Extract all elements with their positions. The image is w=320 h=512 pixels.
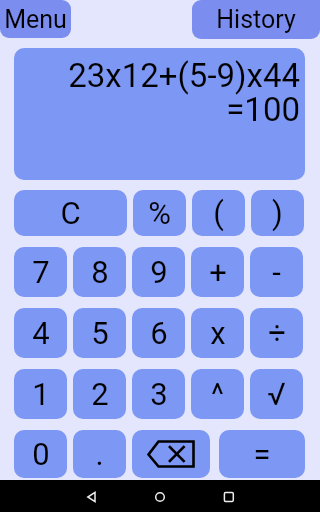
staticText: √ xyxy=(267,376,286,412)
staticText: . xyxy=(95,436,104,472)
button[interactable]: 7 xyxy=(14,247,67,297)
button[interactable]: = xyxy=(219,430,305,478)
staticText: = xyxy=(253,436,271,472)
button[interactable]: 8 xyxy=(73,247,126,297)
staticText: History xyxy=(216,5,296,34)
staticText: 7 xyxy=(32,254,50,290)
staticText: 1 xyxy=(32,376,50,412)
button[interactable]: 2 xyxy=(73,369,126,419)
button[interactable]: ( xyxy=(192,190,245,236)
button[interactable]: % xyxy=(133,190,186,236)
staticText: Menu xyxy=(4,5,67,34)
staticText: ) xyxy=(272,195,283,231)
button[interactable]: Menu xyxy=(0,0,71,38)
staticText: % xyxy=(148,195,171,231)
button[interactable]: x xyxy=(191,308,244,358)
staticText: 23x12+(5-9)x44 =100 xyxy=(14,56,300,129)
button[interactable]: - xyxy=(250,247,303,297)
staticText: 0 xyxy=(32,436,50,472)
staticText: ^ xyxy=(211,376,224,412)
button[interactable]: 3 xyxy=(132,369,185,419)
staticText: x xyxy=(210,315,226,351)
button[interactable]: C xyxy=(14,190,127,236)
staticText: + xyxy=(209,254,227,290)
button[interactable]: ÷ xyxy=(250,308,303,358)
button[interactable]: √ xyxy=(250,369,303,419)
staticText: ( xyxy=(213,195,224,231)
button[interactable]: + xyxy=(191,247,244,297)
staticText: 2 xyxy=(91,376,109,412)
staticText: - xyxy=(272,254,281,290)
button[interactable]: 4 xyxy=(14,308,67,358)
staticText: 8 xyxy=(91,254,109,290)
button[interactable]: 9 xyxy=(132,247,185,297)
button[interactable]: 1 xyxy=(14,369,67,419)
button[interactable]: 6 xyxy=(132,308,185,358)
staticText: C xyxy=(60,195,81,231)
button[interactable]: . xyxy=(73,430,126,478)
staticText: 9 xyxy=(150,254,168,290)
staticText: 5 xyxy=(91,315,109,351)
button[interactable]: 5 xyxy=(73,308,126,358)
staticText: 3 xyxy=(150,376,168,412)
button[interactable]: History xyxy=(192,0,320,39)
staticText: ÷ xyxy=(268,315,286,351)
button[interactable]: ) xyxy=(251,190,304,236)
staticText: 4 xyxy=(32,315,50,351)
staticText: 6 xyxy=(150,315,168,351)
button[interactable] xyxy=(132,430,210,478)
button[interactable]: ^ xyxy=(191,369,244,419)
button[interactable]: 0 xyxy=(14,430,67,478)
